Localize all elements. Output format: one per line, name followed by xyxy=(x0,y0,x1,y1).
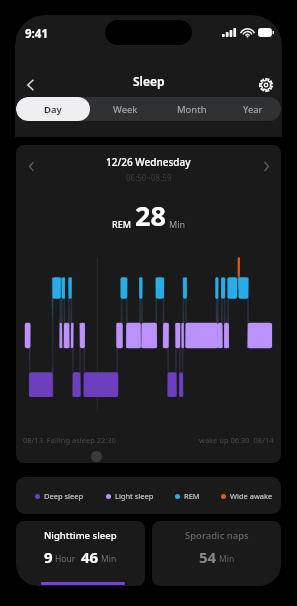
staticText: Deep sleep xyxy=(44,491,84,501)
staticText: 28 xyxy=(135,197,166,234)
button[interactable]: Week xyxy=(90,97,160,121)
button[interactable]: Next day xyxy=(256,156,276,176)
staticText: Hour xyxy=(55,553,76,565)
button[interactable]: Nighttime sleep xyxy=(16,521,145,586)
button[interactable]: Day xyxy=(16,97,90,121)
staticText: Sleep xyxy=(133,73,165,89)
staticText: 08/13 Falling asleep 22:30 xyxy=(23,435,116,445)
button[interactable]: Year xyxy=(224,97,281,121)
staticText: Day xyxy=(44,103,62,116)
staticText: 9 xyxy=(44,547,53,567)
staticText: Wide awake xyxy=(230,491,273,501)
staticText: 9:41 xyxy=(25,26,48,42)
staticText: 46 xyxy=(81,547,99,567)
staticText: wake up 06:30 08/14 xyxy=(199,435,274,445)
staticText: 54 xyxy=(199,547,217,567)
staticText: 12/26 Wednesday xyxy=(106,155,191,169)
staticText: Min xyxy=(101,553,117,565)
button[interactable]: Back xyxy=(17,72,43,98)
button[interactable]: Sporadic naps xyxy=(152,521,281,586)
staticText: REM xyxy=(112,218,131,230)
staticText: Year xyxy=(243,103,263,116)
staticText: Min xyxy=(169,218,186,230)
staticText: Light sleep xyxy=(115,491,154,501)
staticText: Min xyxy=(219,553,235,565)
staticText: Sporadic naps xyxy=(185,529,249,542)
staticText: Week xyxy=(113,103,138,116)
staticText: 06:50~08:59 xyxy=(126,172,172,183)
button[interactable]: Month xyxy=(160,97,224,121)
button[interactable]: Settings xyxy=(253,72,279,98)
staticText: Month xyxy=(177,103,207,116)
staticText: REM xyxy=(184,491,200,501)
button[interactable]: Previous day xyxy=(21,156,41,176)
staticText: Nighttime sleep xyxy=(44,529,117,542)
